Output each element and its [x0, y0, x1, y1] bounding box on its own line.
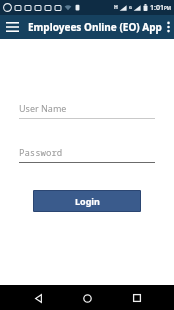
staticText: H: [114, 4, 118, 11]
staticText: User Name: [19, 102, 67, 114]
button[interactable]: User Name: [19, 101, 155, 119]
button[interactable]: Home: [75, 286, 99, 310]
staticText: Password: [19, 146, 63, 158]
button[interactable]: More options: [162, 15, 174, 39]
button[interactable]: Back: [26, 286, 50, 310]
button[interactable]: Recent apps: [125, 286, 149, 310]
button[interactable]: Open navigation drawer: [0, 15, 24, 39]
staticText: G: [129, 5, 132, 10]
staticText: Employees Online (EO) App: [28, 20, 162, 34]
button[interactable]: Password: [19, 145, 155, 163]
button[interactable]: Login: [34, 191, 140, 211]
staticText: 1:01: [150, 3, 164, 13]
staticText: Login: [75, 195, 100, 207]
staticText: PM: [164, 5, 171, 11]
